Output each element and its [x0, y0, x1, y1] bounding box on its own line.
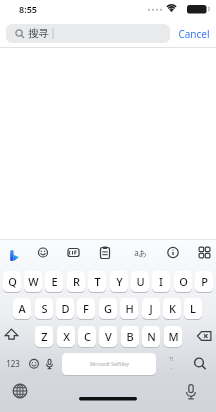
staticText: L	[190, 301, 196, 316]
button[interactable]: T	[88, 271, 106, 292]
staticText: H	[125, 301, 134, 316]
staticText: aあ	[134, 247, 147, 258]
staticText: E	[51, 274, 58, 289]
staticText: F	[83, 301, 89, 316]
staticText: .	[170, 363, 172, 371]
staticText: Y	[116, 274, 123, 289]
button[interactable]	[0, 376, 216, 412]
staticText: Microsoft SwiftKey	[90, 361, 129, 367]
button[interactable]: Y	[110, 271, 128, 292]
button[interactable]: H	[120, 298, 138, 319]
button[interactable]: O	[174, 271, 192, 292]
button[interactable]: K	[163, 298, 181, 319]
button[interactable]: L	[184, 298, 202, 319]
button[interactable]	[62, 353, 156, 375]
staticText: A	[18, 301, 26, 316]
button[interactable]: N	[142, 326, 160, 347]
staticText: T	[94, 274, 101, 289]
staticText: S	[41, 301, 48, 316]
button[interactable]: V	[99, 326, 117, 347]
button[interactable]: Z	[35, 326, 53, 347]
button[interactable]: R	[67, 271, 85, 292]
button[interactable]: J	[142, 298, 160, 319]
button[interactable]: I	[152, 271, 170, 292]
staticText: D	[61, 301, 70, 316]
button[interactable]: X	[57, 326, 75, 347]
staticText: 123	[6, 358, 20, 369]
button[interactable]: B	[121, 326, 139, 347]
staticText: X	[63, 329, 70, 344]
staticText: W	[28, 274, 39, 289]
staticText: R	[73, 274, 80, 289]
staticText: K	[169, 301, 176, 316]
button[interactable]: Cancel	[174, 24, 214, 43]
button[interactable]: U	[131, 271, 149, 292]
button[interactable]: A	[13, 298, 31, 319]
staticText: 搜寻	[28, 27, 49, 40]
button[interactable]: 123	[2, 353, 24, 374]
button[interactable]: C	[78, 326, 96, 347]
staticText: I	[159, 274, 163, 289]
button[interactable]: E	[45, 271, 63, 292]
staticText: N	[147, 329, 156, 344]
button[interactable]: 搜寻	[6, 24, 170, 43]
button[interactable]: D	[56, 298, 74, 319]
staticText: J	[149, 301, 153, 316]
button[interactable]: S	[35, 298, 53, 319]
staticText: B	[126, 329, 134, 344]
button[interactable]: M	[164, 326, 182, 347]
staticText: Q	[8, 274, 17, 289]
staticText: C	[84, 329, 91, 344]
button[interactable]: Q	[3, 271, 21, 292]
staticText: G	[104, 301, 112, 316]
staticText: M	[168, 329, 179, 344]
button[interactable]: G	[99, 298, 117, 319]
staticText: P	[201, 274, 208, 289]
button[interactable]	[190, 354, 210, 374]
button[interactable]: P	[195, 271, 213, 292]
staticText: ?!	[169, 356, 173, 363]
staticText: V	[105, 329, 112, 344]
staticText: 8:55	[19, 3, 37, 15]
staticText: Cancel	[178, 27, 210, 41]
staticText: Z	[41, 329, 48, 344]
button[interactable]: W	[24, 271, 42, 292]
staticText: U	[136, 274, 145, 289]
button[interactable]: F	[77, 298, 95, 319]
staticText: O	[179, 274, 188, 289]
